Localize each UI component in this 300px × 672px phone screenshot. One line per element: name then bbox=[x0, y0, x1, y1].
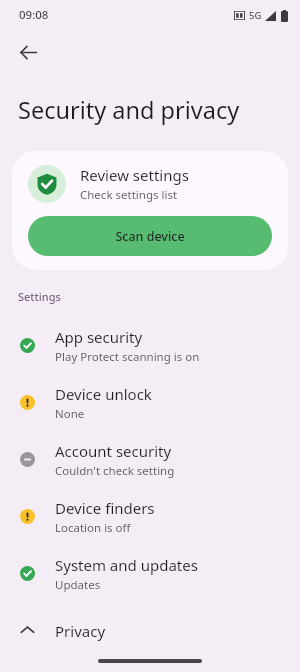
staticText: 5G bbox=[249, 9, 262, 22]
staticText: Review settings bbox=[80, 165, 189, 185]
staticText: Device unlock bbox=[55, 384, 152, 404]
staticText: Settings bbox=[18, 289, 61, 304]
staticText: Couldn't check setting bbox=[55, 463, 175, 479]
staticText: Privacy bbox=[55, 621, 106, 641]
button[interactable]: Scan device bbox=[28, 216, 272, 256]
staticText: None bbox=[55, 406, 85, 422]
staticText: System and updates bbox=[55, 555, 198, 575]
button[interactable]: Account security bbox=[0, 431, 300, 488]
button[interactable]: Device unlock bbox=[0, 374, 300, 431]
staticText: Location is off bbox=[55, 520, 131, 536]
staticText: Updates bbox=[55, 577, 101, 593]
button[interactable]: Review settings bbox=[12, 151, 288, 270]
button[interactable]: System and updates bbox=[0, 545, 300, 602]
button[interactable]: Privacy bbox=[0, 602, 300, 659]
staticText: Account security bbox=[55, 441, 172, 461]
button[interactable]: Back bbox=[6, 30, 50, 74]
staticText: App security bbox=[55, 327, 143, 347]
staticText: Scan device bbox=[115, 228, 185, 245]
staticText: 09:08 bbox=[19, 7, 49, 23]
button[interactable]: Device finders bbox=[0, 488, 300, 545]
button[interactable]: App security bbox=[0, 317, 300, 374]
staticText: Play Protect scanning is on bbox=[55, 349, 200, 365]
staticText: Device finders bbox=[55, 498, 155, 518]
staticText: Security and privacy bbox=[18, 94, 240, 126]
staticText: Check settings list bbox=[80, 187, 178, 203]
